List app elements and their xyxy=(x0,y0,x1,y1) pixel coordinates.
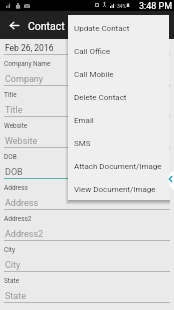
staticText: Email xyxy=(74,116,94,125)
button[interactable]: Back xyxy=(4,11,24,39)
staticText: Title xyxy=(5,105,23,116)
staticText: DOB xyxy=(5,167,23,178)
staticText: SMS xyxy=(74,139,91,148)
staticText: Contact xyxy=(28,20,65,32)
staticText: Title xyxy=(4,91,17,99)
staticText: Update Contact xyxy=(74,24,130,33)
button[interactable]: Website xyxy=(0,117,174,148)
staticText: Address xyxy=(4,184,28,192)
button[interactable]: Delete Contact xyxy=(68,86,169,109)
button[interactable]: Email xyxy=(68,109,169,132)
button[interactable]: Open side panel xyxy=(168,169,174,191)
staticText: Address2 xyxy=(5,229,44,240)
staticText: Website xyxy=(5,136,38,147)
button[interactable]: DOB xyxy=(0,148,174,179)
staticText: Delete Contact xyxy=(74,93,127,102)
button[interactable]: Title xyxy=(0,86,174,117)
button[interactable]: View Document/Image xyxy=(68,178,169,201)
staticText: Attach Document/Image xyxy=(74,162,162,171)
button[interactable]: SMS xyxy=(68,132,169,155)
staticText: State xyxy=(4,277,20,285)
button[interactable]: Address xyxy=(0,179,174,210)
staticText: DOB xyxy=(4,153,17,161)
staticText: Address xyxy=(5,198,39,209)
button[interactable]: Address2 xyxy=(0,210,174,241)
staticText: Address2 xyxy=(4,215,32,223)
staticText: City xyxy=(5,260,21,271)
staticText: Company Name xyxy=(4,60,51,68)
staticText: 3:48 PM xyxy=(139,1,173,12)
button[interactable]: State xyxy=(0,272,174,303)
button[interactable]: Call Mobile xyxy=(68,63,169,86)
staticText: City xyxy=(4,246,16,254)
staticText: Website xyxy=(4,122,28,130)
button[interactable]: Call Office xyxy=(68,40,169,63)
staticText: Call Office xyxy=(74,47,111,56)
button[interactable]: City xyxy=(0,241,174,272)
button[interactable]: Company Name xyxy=(0,55,174,86)
staticText: Feb 26, 2016 xyxy=(5,43,54,53)
staticText: Company xyxy=(5,74,44,85)
staticText: 34% xyxy=(117,3,127,9)
button[interactable]: Attach Document/Image xyxy=(68,155,169,178)
staticText: State xyxy=(5,291,26,302)
button[interactable]: Update Contact xyxy=(68,17,169,40)
staticText: Call Mobile xyxy=(74,70,114,79)
staticText: View Document/Image xyxy=(74,185,156,194)
